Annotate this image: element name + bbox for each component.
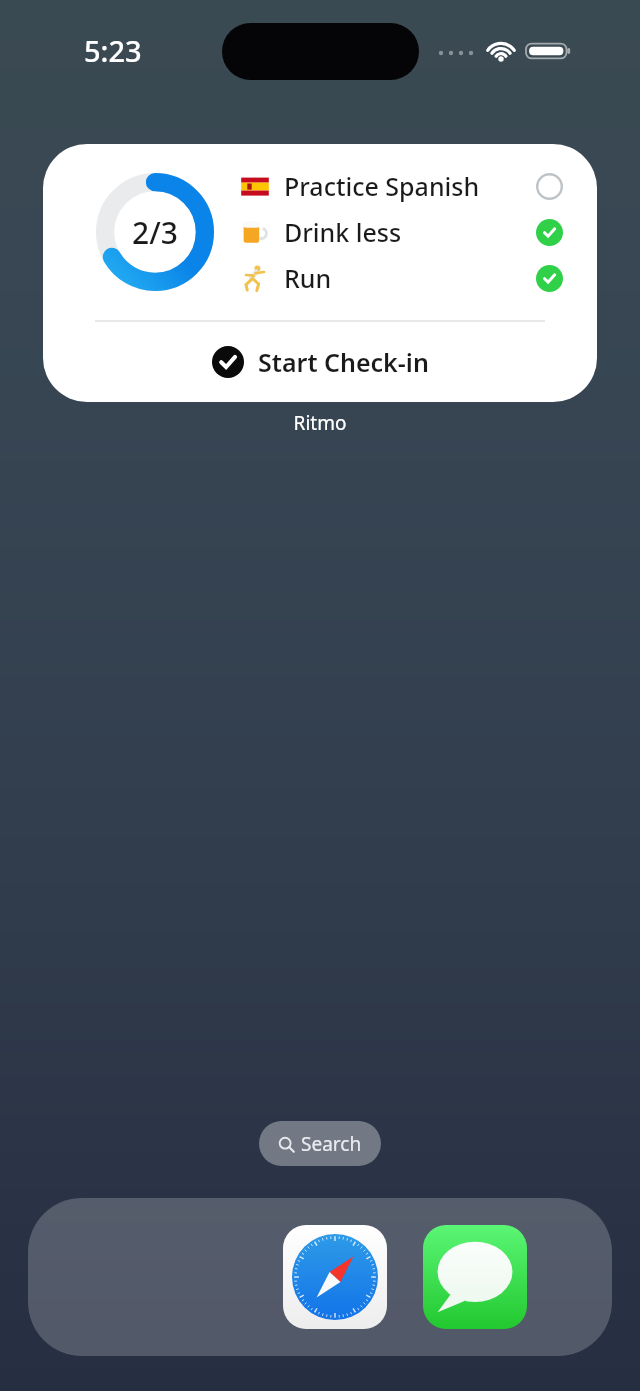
button[interactable]: Safari xyxy=(283,1225,387,1329)
staticText: 5:23 xyxy=(84,31,142,70)
staticText: 2/3 xyxy=(132,212,178,253)
button[interactable]: Practice Spanish xyxy=(240,169,563,203)
button[interactable]: 2/3 xyxy=(43,144,597,402)
button[interactable]: Start Check-in xyxy=(43,322,597,402)
staticText: Drink less xyxy=(284,215,536,249)
staticText: Ritmo xyxy=(43,410,597,436)
staticText: Practice Spanish xyxy=(284,169,536,203)
staticText: Search xyxy=(301,1131,362,1157)
button[interactable]: Run xyxy=(240,261,563,295)
staticText: Start Check-in xyxy=(258,345,429,379)
button[interactable]: Search xyxy=(259,1121,381,1166)
button[interactable]: Drink less xyxy=(240,215,563,249)
button[interactable]: Messages xyxy=(423,1225,527,1329)
staticText: Run xyxy=(284,261,536,295)
